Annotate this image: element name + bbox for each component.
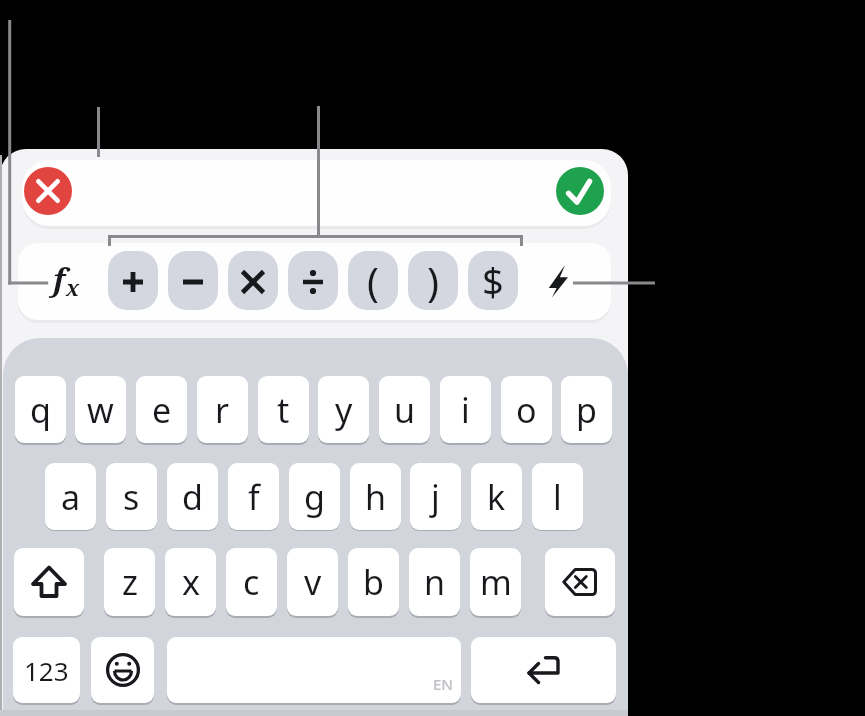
- staticText: g: [304, 474, 325, 520]
- button[interactable]: r: [197, 376, 248, 443]
- button[interactable]: (: [348, 251, 398, 310]
- staticText: k: [487, 474, 506, 520]
- staticText: EN: [433, 674, 453, 694]
- button[interactable]: p: [561, 376, 612, 443]
- button[interactable]: 123: [13, 637, 80, 703]
- staticText: w: [87, 387, 114, 433]
- staticText: f: [248, 474, 260, 520]
- button[interactable]: g: [289, 463, 340, 530]
- button[interactable]: l: [532, 463, 583, 530]
- button[interactable]: k: [471, 463, 522, 530]
- staticText: j: [431, 474, 440, 520]
- button[interactable]: c: [226, 548, 277, 616]
- staticText: ): [427, 254, 439, 308]
- staticText: c: [243, 559, 260, 605]
- staticText: p: [576, 387, 597, 433]
- button[interactable]: o: [501, 376, 552, 443]
- button[interactable]: v: [287, 548, 338, 616]
- staticText: i: [461, 387, 470, 433]
- button[interactable]: b: [348, 548, 399, 616]
- button[interactable]: f: [228, 463, 279, 530]
- staticText: h: [365, 474, 387, 520]
- button[interactable]: [556, 167, 604, 215]
- staticText: q: [30, 387, 51, 433]
- button[interactable]: q: [15, 376, 66, 443]
- button[interactable]: y: [318, 376, 369, 443]
- staticText: $: [482, 255, 504, 307]
- staticText: f: [53, 258, 66, 300]
- button[interactable]: f: [38, 248, 98, 314]
- button[interactable]: x: [165, 548, 216, 616]
- button[interactable]: [545, 548, 615, 616]
- staticText: a: [61, 474, 81, 520]
- button[interactable]: [108, 251, 158, 310]
- button[interactable]: d: [167, 463, 218, 530]
- button[interactable]: m: [470, 548, 521, 616]
- button[interactable]: u: [379, 376, 430, 443]
- button[interactable]: [540, 258, 576, 304]
- staticText: d: [182, 474, 203, 520]
- staticText: t: [277, 387, 290, 433]
- staticText: 123: [24, 653, 69, 688]
- button[interactable]: w: [75, 376, 126, 443]
- staticText: y: [335, 387, 353, 433]
- staticText: x: [182, 559, 200, 605]
- staticText: m: [480, 559, 512, 605]
- button[interactable]: a: [45, 463, 96, 530]
- button[interactable]: h: [350, 463, 401, 530]
- button[interactable]: i: [440, 376, 491, 443]
- button[interactable]: [24, 167, 72, 215]
- button[interactable]: t: [258, 376, 309, 443]
- staticText: v: [304, 559, 322, 605]
- staticText: (: [367, 254, 379, 308]
- button[interactable]: [288, 251, 338, 310]
- button[interactable]: e: [136, 376, 187, 443]
- staticText: r: [215, 387, 230, 433]
- button[interactable]: ): [408, 251, 458, 310]
- staticText: u: [394, 387, 416, 433]
- button[interactable]: EN: [167, 637, 461, 703]
- staticText: b: [363, 559, 384, 605]
- staticText: e: [152, 387, 172, 433]
- button[interactable]: [168, 251, 218, 310]
- staticText: n: [424, 559, 446, 605]
- button[interactable]: [471, 637, 616, 703]
- button[interactable]: j: [410, 463, 461, 530]
- button[interactable]: z: [104, 548, 155, 616]
- staticText: l: [553, 474, 562, 520]
- button[interactable]: s: [106, 463, 157, 530]
- button[interactable]: [14, 548, 84, 616]
- button[interactable]: [91, 637, 154, 703]
- button[interactable]: n: [409, 548, 460, 616]
- staticText: z: [122, 559, 138, 605]
- staticText: o: [516, 387, 537, 433]
- button[interactable]: $: [468, 251, 518, 310]
- staticText: s: [123, 474, 140, 520]
- staticText: x: [66, 272, 80, 302]
- button[interactable]: [228, 251, 278, 310]
